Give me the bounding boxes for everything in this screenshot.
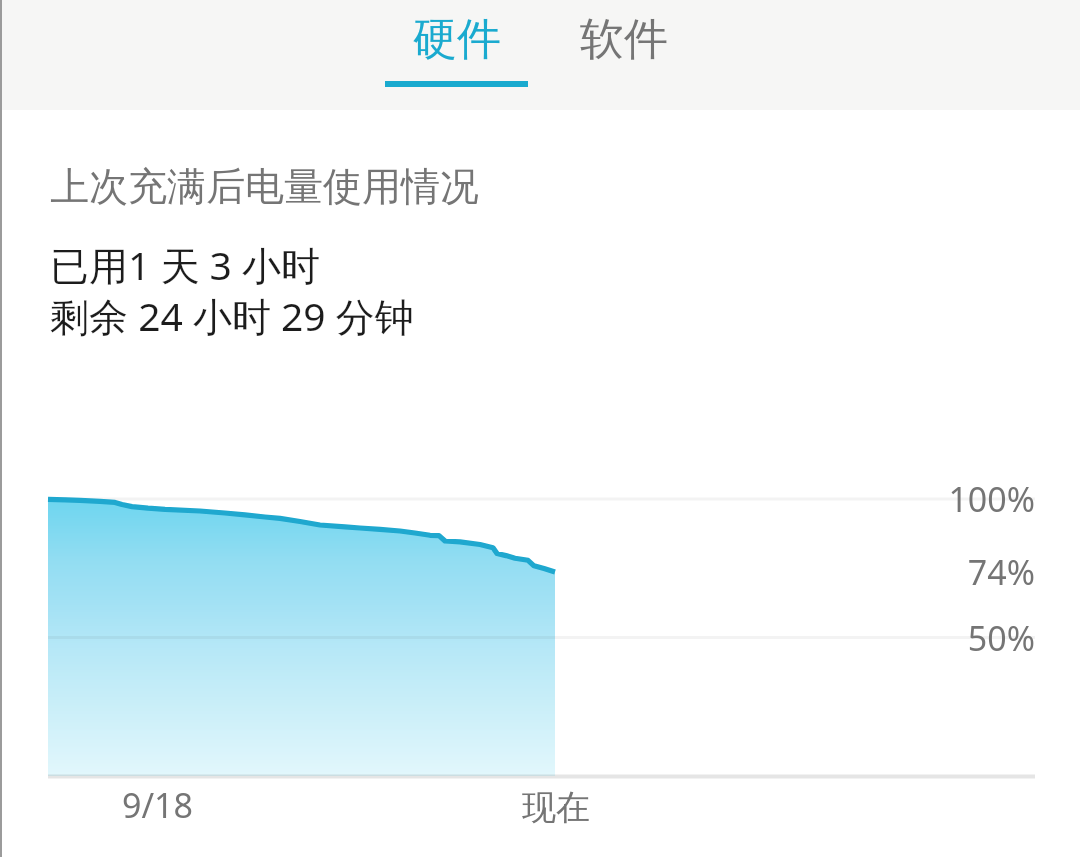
button[interactable]: 软件: [552, 0, 695, 110]
staticText: 50%: [880, 615, 1035, 661]
staticText: 74%: [880, 549, 1035, 595]
staticText: 100%: [880, 476, 1035, 522]
staticText: 现在: [522, 786, 590, 829]
staticText: 硬件: [413, 12, 501, 67]
staticText: 软件: [580, 12, 668, 67]
button[interactable]: 硬件: [385, 0, 528, 110]
staticText: 已用1 天 3 小时: [50, 238, 321, 291]
staticText: 剩余 24 小时 29 分钟: [50, 289, 414, 342]
staticText: 9/18: [122, 782, 193, 828]
staticText: 上次充满后电量使用情况: [50, 162, 479, 211]
